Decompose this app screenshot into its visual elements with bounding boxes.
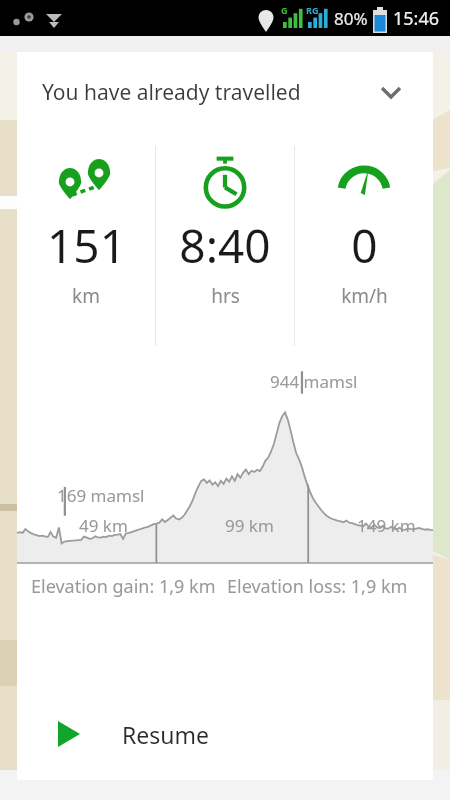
staticText: 15:46 xyxy=(393,6,440,31)
staticText: 169 mamsl xyxy=(57,484,145,507)
staticText: hrs xyxy=(211,283,240,309)
staticText: You have already travelled xyxy=(42,78,301,107)
staticText: G xyxy=(281,4,288,16)
button[interactable]: 944 mamsl xyxy=(17,360,433,565)
staticText: km/h xyxy=(341,283,388,309)
button[interactable]: Elevation gain: 1,9 km xyxy=(17,565,433,607)
staticText: 944 mamsl xyxy=(270,370,358,393)
staticText: 151 xyxy=(47,214,126,277)
staticText: 0 xyxy=(351,214,378,277)
staticText: Resume xyxy=(122,719,209,750)
staticText: 49 km xyxy=(79,514,128,537)
staticText: km xyxy=(72,283,100,309)
button[interactable]: Collapse xyxy=(371,72,411,112)
staticText: RG xyxy=(306,4,319,16)
staticText: 8:40 xyxy=(179,214,271,277)
staticText: 80% xyxy=(334,7,368,30)
staticText: Elevation gain: 1,9 km xyxy=(31,574,216,599)
button[interactable]: 151 xyxy=(17,132,155,360)
button[interactable]: 0 xyxy=(295,132,433,360)
staticText: 99 km xyxy=(225,514,274,537)
button[interactable]: You have already travelled xyxy=(17,52,433,132)
staticText: Elevation loss: 1,9 km xyxy=(227,574,408,599)
button[interactable]: Resume xyxy=(17,706,433,762)
staticText: 149 km xyxy=(357,514,416,537)
button[interactable]: 8:40 xyxy=(156,132,294,360)
